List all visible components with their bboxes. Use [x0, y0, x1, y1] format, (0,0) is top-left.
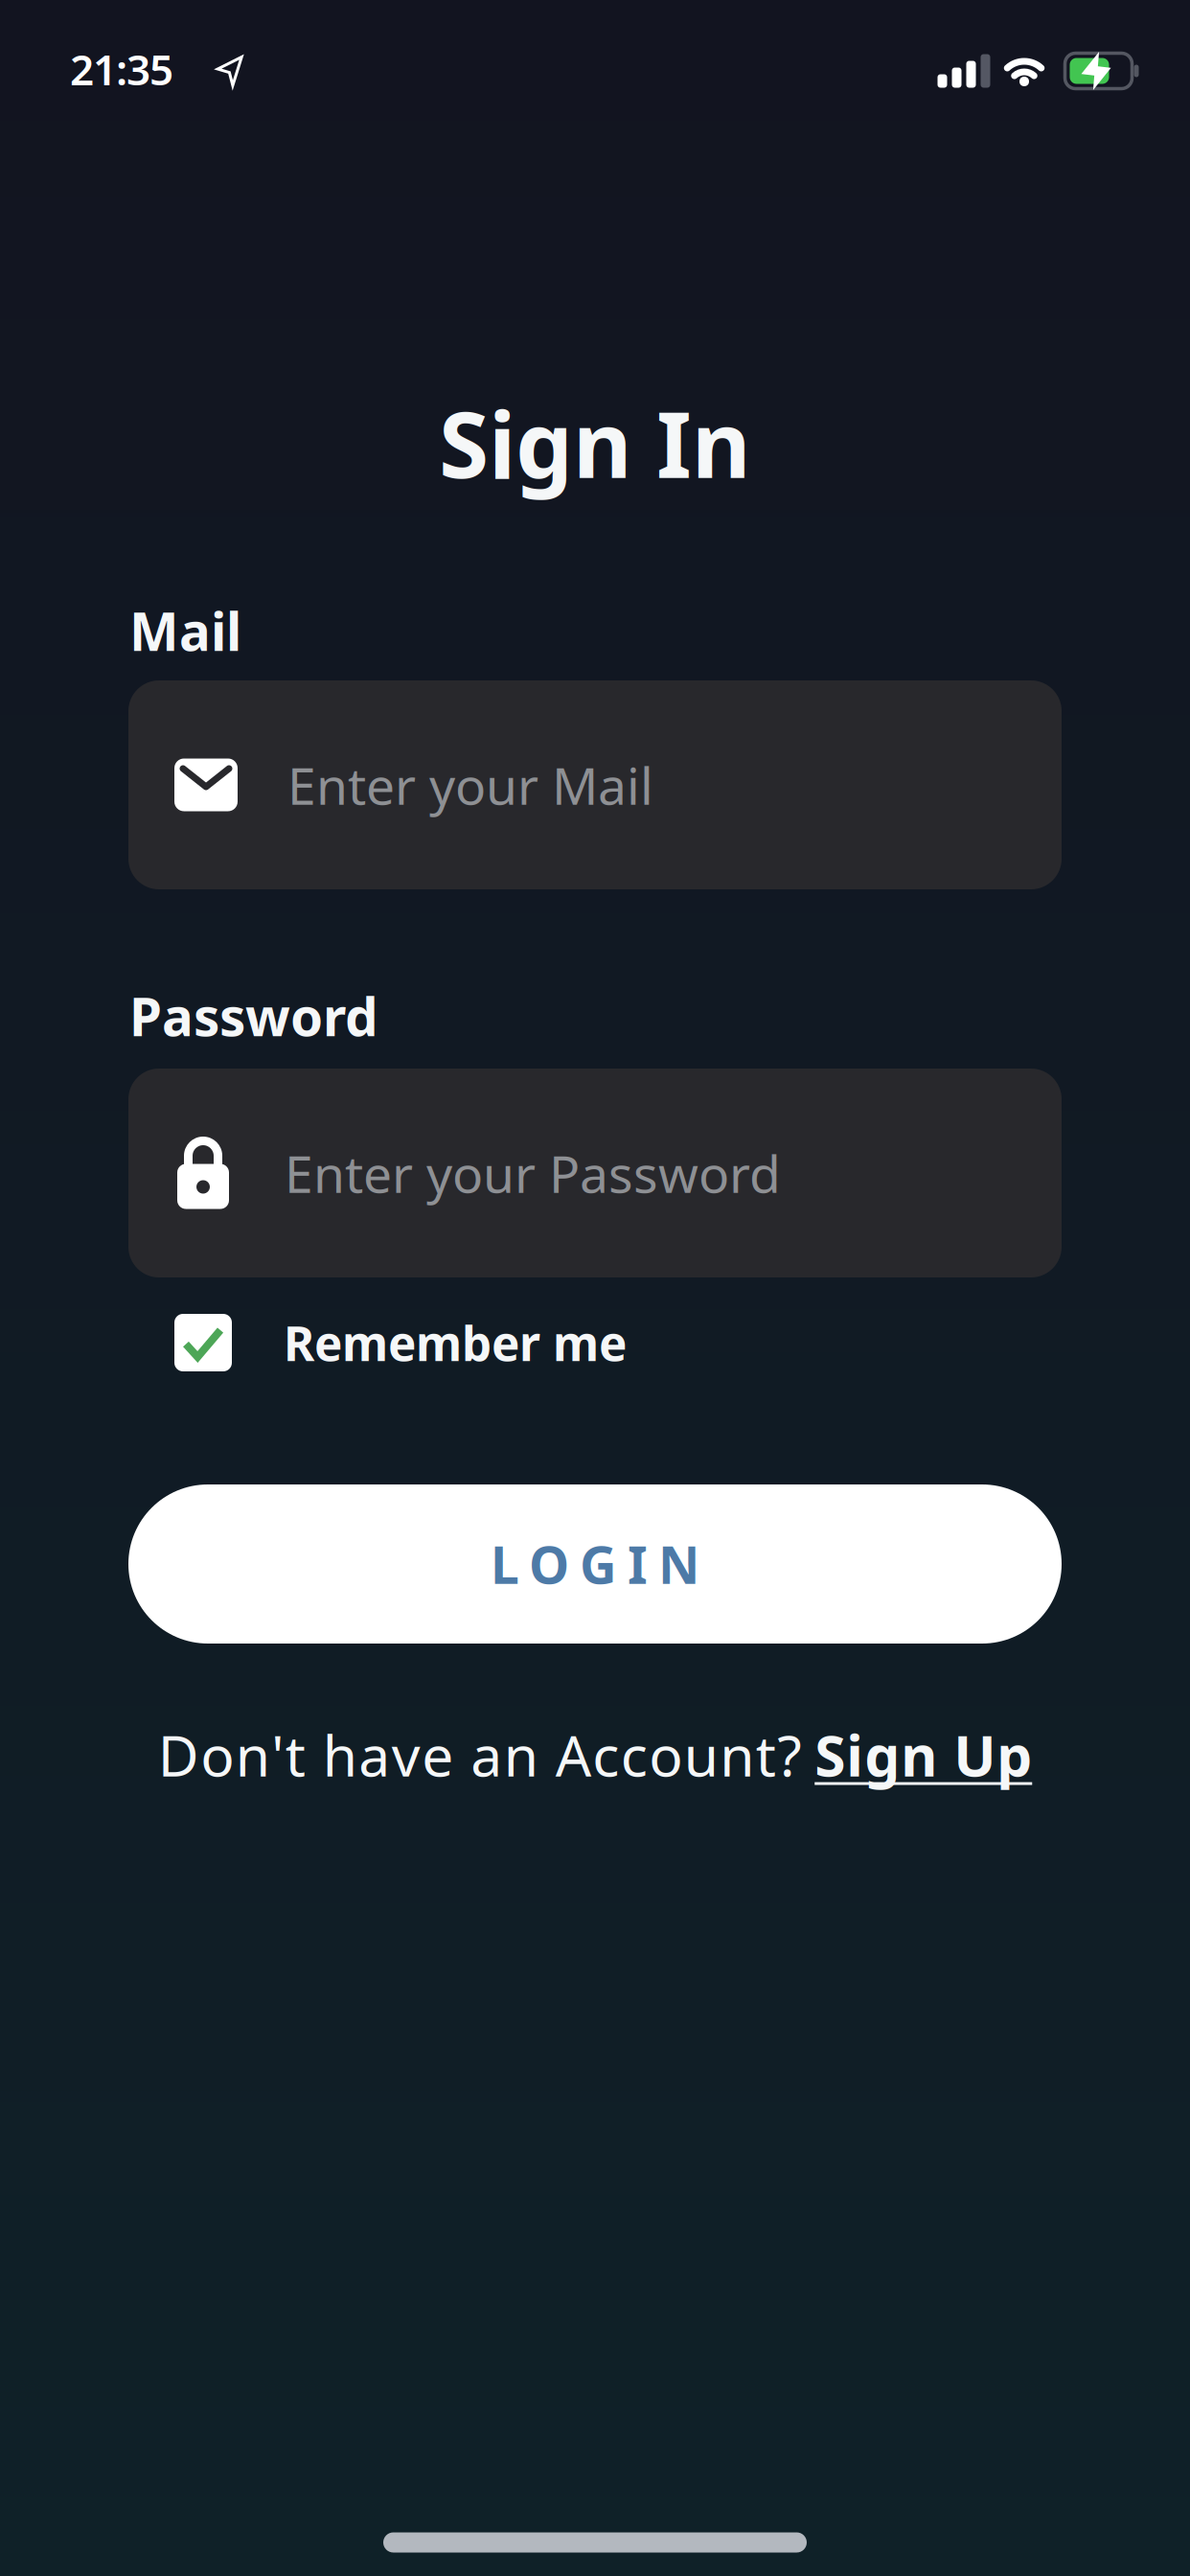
staticText: Sign In: [439, 382, 751, 503]
staticText: 21:35: [70, 41, 173, 97]
staticText: LOGIN: [491, 1530, 699, 1598]
staticText: Sign Up: [815, 1717, 1032, 1792]
staticText: Enter your Password: [285, 1139, 781, 1207]
button[interactable]: Remember me: [174, 1314, 845, 1371]
staticText: Don't have an Account?: [158, 1717, 801, 1792]
button[interactable]: LOGIN: [128, 1484, 1062, 1644]
staticText: Password: [129, 981, 378, 1051]
staticText: Mail: [129, 596, 241, 665]
staticText: Enter your Mail: [287, 751, 653, 819]
staticText: Remember me: [284, 1311, 627, 1374]
button[interactable]: Enter your Mail: [128, 680, 1062, 889]
button[interactable]: Don't have an Account?: [158, 1717, 1032, 1792]
button[interactable]: Enter your Password: [128, 1069, 1062, 1277]
